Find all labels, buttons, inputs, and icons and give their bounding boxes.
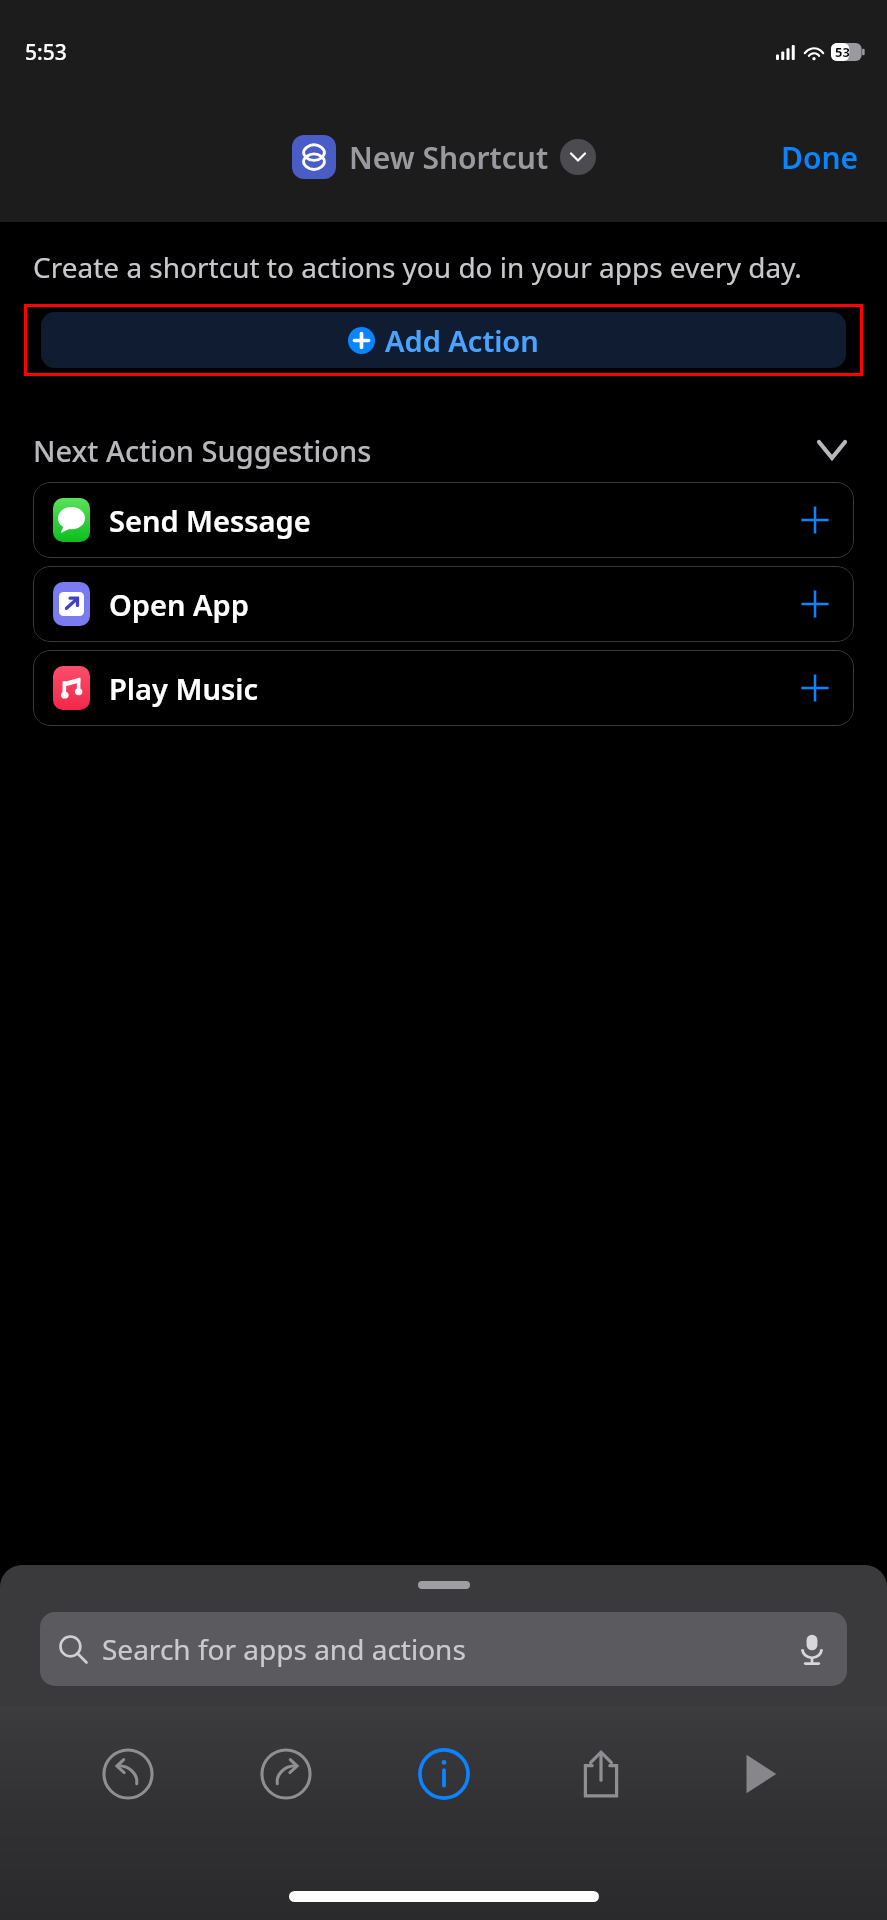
staticText: Next Action Suggestions <box>33 431 372 470</box>
button[interactable]: Shortcut icon <box>292 135 336 179</box>
button[interactable]: Redo <box>238 1728 334 1820</box>
staticText: Open App <box>109 585 249 624</box>
button[interactable]: Collapse suggestions <box>811 429 853 471</box>
button[interactable]: Play Music <box>33 650 854 726</box>
button[interactable]: Shortcut options <box>560 139 596 175</box>
button[interactable]: Send Message <box>33 482 854 558</box>
staticText: Done <box>781 137 859 178</box>
staticText: 5:53 <box>25 38 67 67</box>
staticText: Play Music <box>109 669 258 708</box>
staticText: Send Message <box>109 501 311 540</box>
button[interactable]: Add Action <box>41 312 846 368</box>
staticText: New Shortcut <box>349 137 549 178</box>
staticText: Create a shortcut to actions you do in y… <box>33 248 851 286</box>
button[interactable]: Run <box>711 1728 807 1820</box>
button[interactable]: Undo <box>80 1728 176 1820</box>
button[interactable]: Share <box>553 1728 649 1820</box>
button[interactable]: Open App <box>33 566 854 642</box>
button[interactable]: Voice search <box>795 1632 829 1666</box>
button[interactable]: Done <box>775 131 865 184</box>
staticText: 53 <box>835 43 850 61</box>
staticText: Add Action <box>385 321 539 360</box>
staticText: Search for apps and actions <box>102 1630 466 1668</box>
button[interactable]: Search for apps and actions <box>40 1612 847 1686</box>
button[interactable]: Details <box>396 1728 492 1820</box>
